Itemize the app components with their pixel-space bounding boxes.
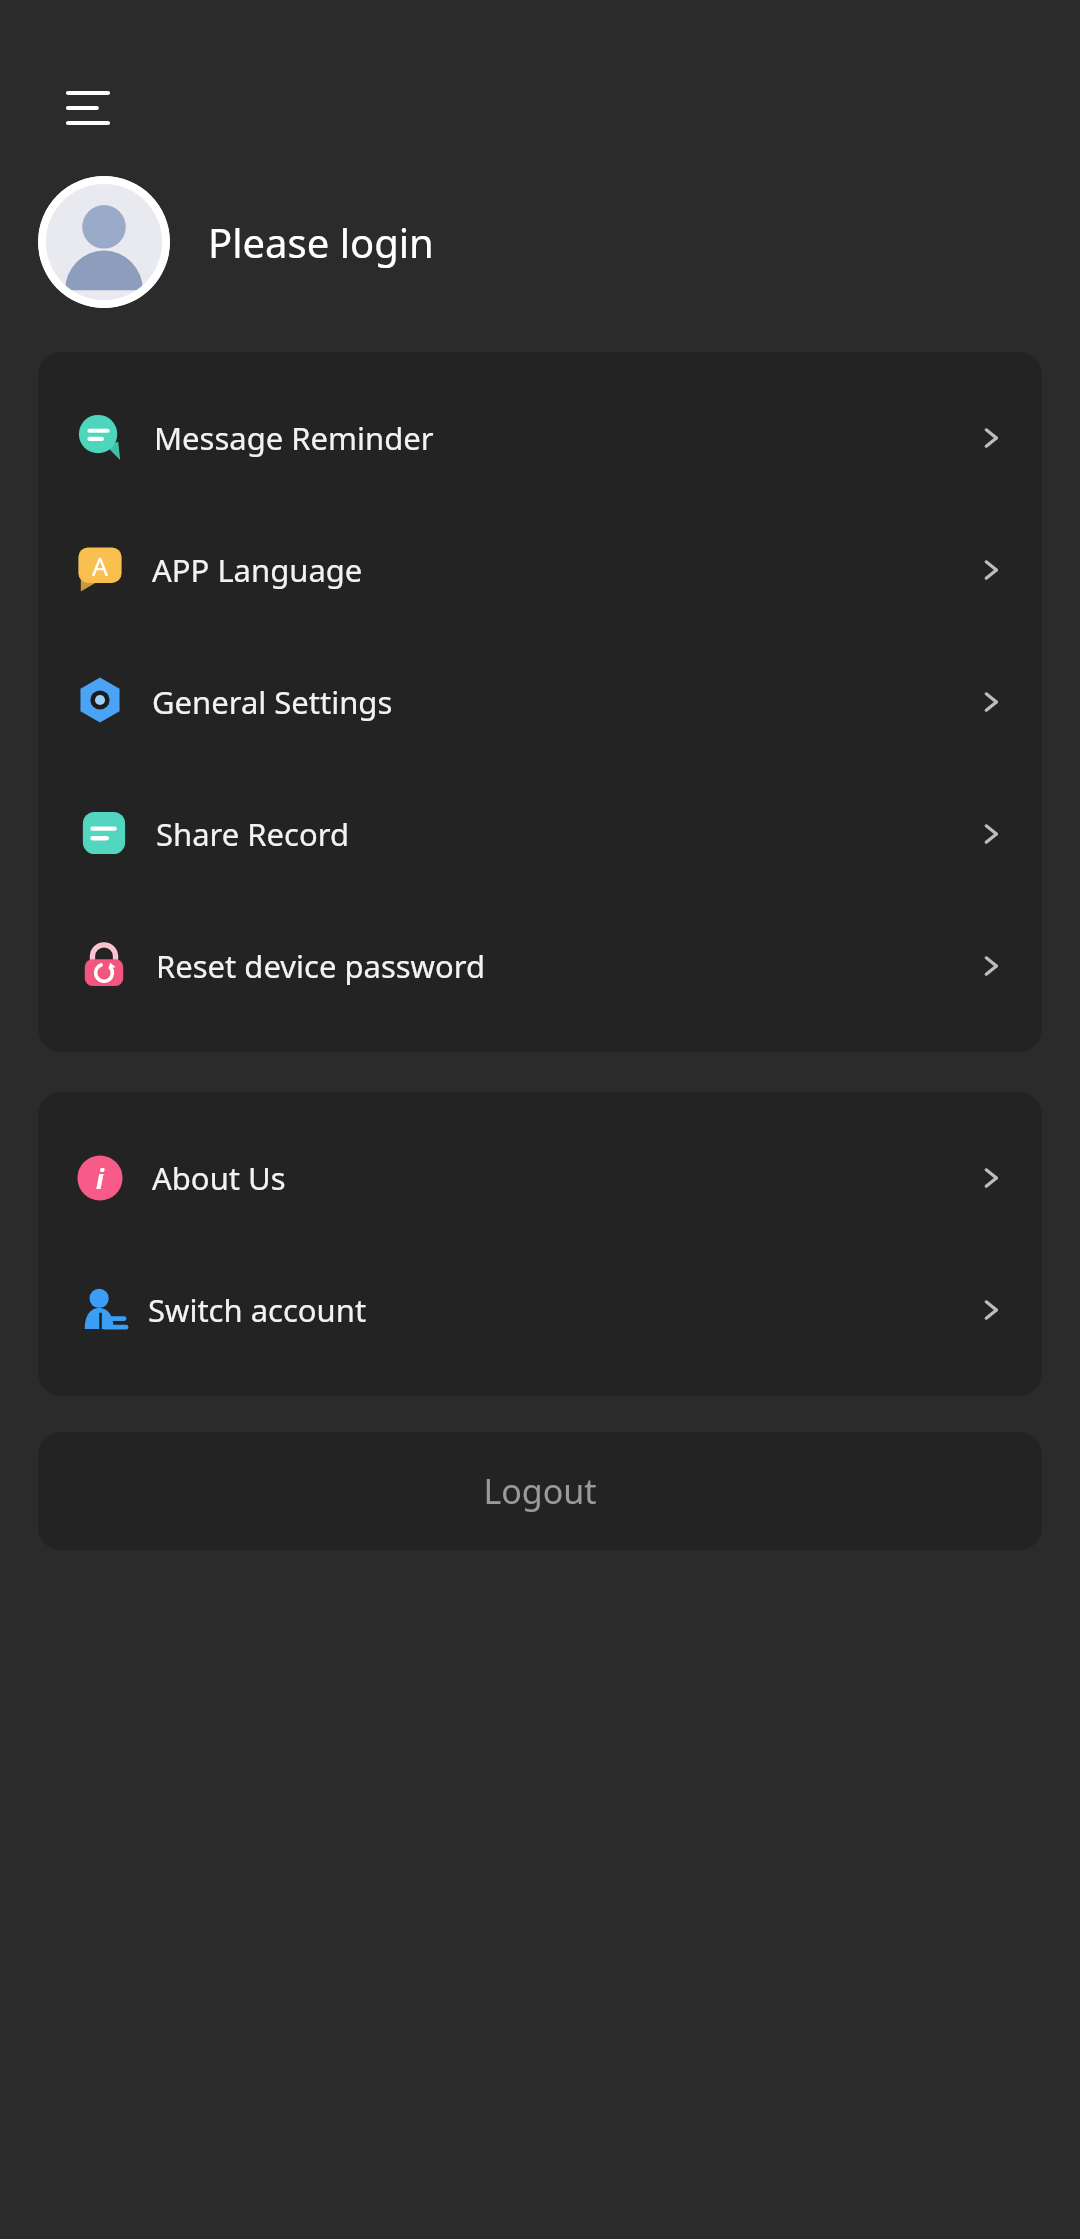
button[interactable]: Switch account (38, 1244, 1042, 1376)
button[interactable]: Message Reminder (38, 372, 1042, 504)
staticText: Reset device password (156, 945, 974, 987)
button[interactable]: Reset device password (38, 900, 1042, 1032)
staticText: Please login (208, 215, 434, 269)
button[interactable]: Please login (0, 176, 1080, 308)
button[interactable]: Menu (62, 82, 114, 134)
button[interactable]: Share Record (38, 768, 1042, 900)
button[interactable]: Logout (38, 1432, 1042, 1550)
staticText: Switch account (148, 1289, 974, 1331)
button[interactable]: A (38, 504, 1042, 636)
staticText: About Us (152, 1157, 974, 1199)
button[interactable]: General Settings (38, 636, 1042, 768)
button[interactable]: i (38, 1112, 1042, 1244)
staticText: Logout (483, 1468, 597, 1514)
staticText: i (96, 1161, 104, 1196)
staticText: APP Language (152, 549, 974, 591)
staticText: A (92, 549, 108, 583)
staticText: General Settings (152, 681, 974, 723)
staticText: Message Reminder (154, 417, 974, 459)
staticText: Share Record (156, 813, 974, 855)
